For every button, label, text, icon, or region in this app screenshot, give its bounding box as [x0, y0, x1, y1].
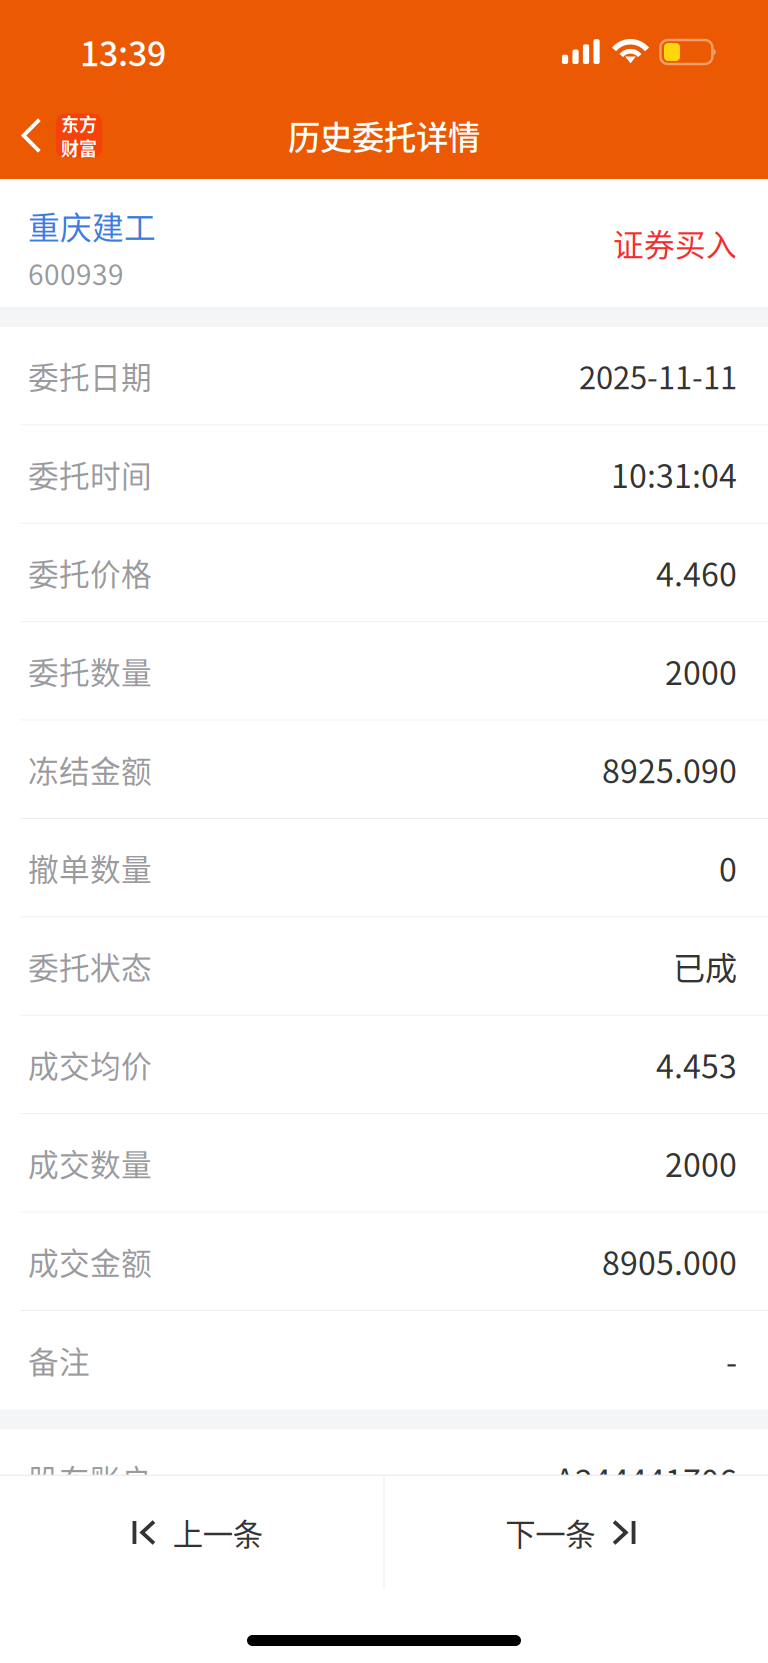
- staticText: 13:39: [80, 27, 166, 76]
- button[interactable]: 上一条: [0, 1476, 383, 1589]
- staticText: 2000: [665, 648, 737, 694]
- staticText: 委托时间: [28, 452, 152, 496]
- button[interactable]: 下一条: [385, 1476, 768, 1589]
- button[interactable]: 成交金额: [0, 1213, 768, 1311]
- staticText: 东方: [61, 110, 97, 136]
- button[interactable]: 冻结金额: [0, 721, 768, 819]
- staticText: 备注: [28, 1338, 90, 1382]
- staticText: 2025-11-11: [579, 353, 737, 398]
- staticText: 已成: [673, 943, 737, 989]
- staticText: 历史委托详情: [288, 112, 480, 159]
- staticText: 0: [719, 844, 737, 891]
- staticText: 财富: [61, 134, 97, 161]
- staticText: 成交数量: [28, 1141, 152, 1185]
- button[interactable]: 成交均价: [0, 1016, 768, 1114]
- staticText: 撤单数量: [28, 845, 152, 890]
- button[interactable]: 股东账户: [0, 1429, 768, 1528]
- staticText: 8905.000: [602, 1238, 737, 1284]
- staticText: 8925.090: [602, 746, 737, 792]
- staticText: 4.460: [656, 549, 737, 596]
- button[interactable]: 委托价格: [0, 524, 768, 622]
- button[interactable]: 委托状态: [0, 917, 768, 1016]
- button[interactable]: 成交数量: [0, 1114, 768, 1213]
- staticText: -: [726, 1337, 737, 1383]
- button[interactable]: 撤单数量: [0, 819, 768, 917]
- staticText: 证券买入: [613, 221, 737, 265]
- staticText: 冻结金额: [28, 747, 152, 791]
- staticText: 600939: [28, 253, 124, 293]
- button[interactable]: 委托时间: [0, 425, 768, 524]
- staticText: 上一条: [173, 1510, 263, 1554]
- staticText: 股东账户: [28, 1456, 152, 1501]
- staticText: 10:31:04: [611, 451, 737, 497]
- button[interactable]: 委托数量: [0, 622, 768, 721]
- button[interactable]: 委托日期: [0, 327, 768, 425]
- staticText: 成交金额: [28, 1239, 152, 1283]
- staticText: 4.453: [656, 1041, 737, 1088]
- staticText: 2000: [665, 1140, 737, 1186]
- staticText: 委托日期: [28, 353, 152, 398]
- staticText: 下一条: [505, 1510, 595, 1554]
- staticText: 委托状态: [28, 944, 152, 988]
- button[interactable]: Back: [0, 92, 116, 179]
- staticText: 委托数量: [28, 649, 152, 693]
- staticText: 委托价格: [28, 550, 152, 595]
- staticText: A244441706: [555, 1455, 737, 1502]
- staticText: 成交均价: [28, 1042, 152, 1087]
- button[interactable]: 备注: [0, 1311, 768, 1409]
- staticText: 重庆建工: [28, 203, 156, 249]
